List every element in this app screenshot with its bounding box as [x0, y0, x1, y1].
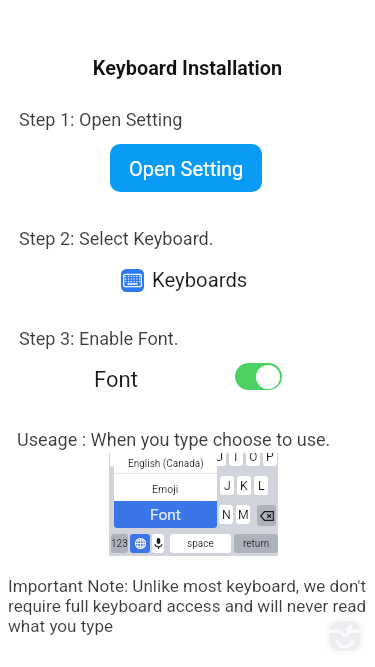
staticText: 123: [111, 538, 128, 550]
staticText: O: [249, 453, 258, 464]
staticText: Emoji: [152, 483, 179, 495]
button[interactable]: Keyboards: [121, 268, 248, 292]
staticText: L: [258, 479, 265, 493]
staticText: English (Canada): [128, 458, 204, 470]
staticText: J: [224, 479, 231, 493]
staticText: Useage : When you type choose to use.: [17, 429, 331, 450]
staticText: Step 1: Open Setting: [19, 109, 183, 130]
staticText: Important Note: Unlike most keyboard, we…: [8, 576, 368, 636]
staticText: Font: [94, 367, 138, 393]
staticText: U: [215, 453, 223, 464]
button[interactable]: Open Setting: [110, 144, 262, 192]
button[interactable]: Toggle Font: [235, 363, 282, 390]
staticText: space: [187, 538, 214, 550]
staticText: Step 3: Enable Font.: [19, 328, 179, 349]
staticText: return: [243, 538, 270, 550]
staticText: Keyboards: [152, 268, 248, 292]
staticText: M: [238, 508, 249, 522]
staticText: Keyboard Installation: [0, 57, 375, 80]
staticText: Step 2: Select Keyboard.: [19, 228, 214, 249]
staticText: N: [222, 508, 231, 522]
staticText: Font: [150, 506, 181, 524]
staticText: I: [234, 453, 238, 464]
staticText: K: [240, 479, 248, 493]
staticText: P: [266, 453, 274, 464]
staticText: Open Setting: [129, 157, 244, 180]
